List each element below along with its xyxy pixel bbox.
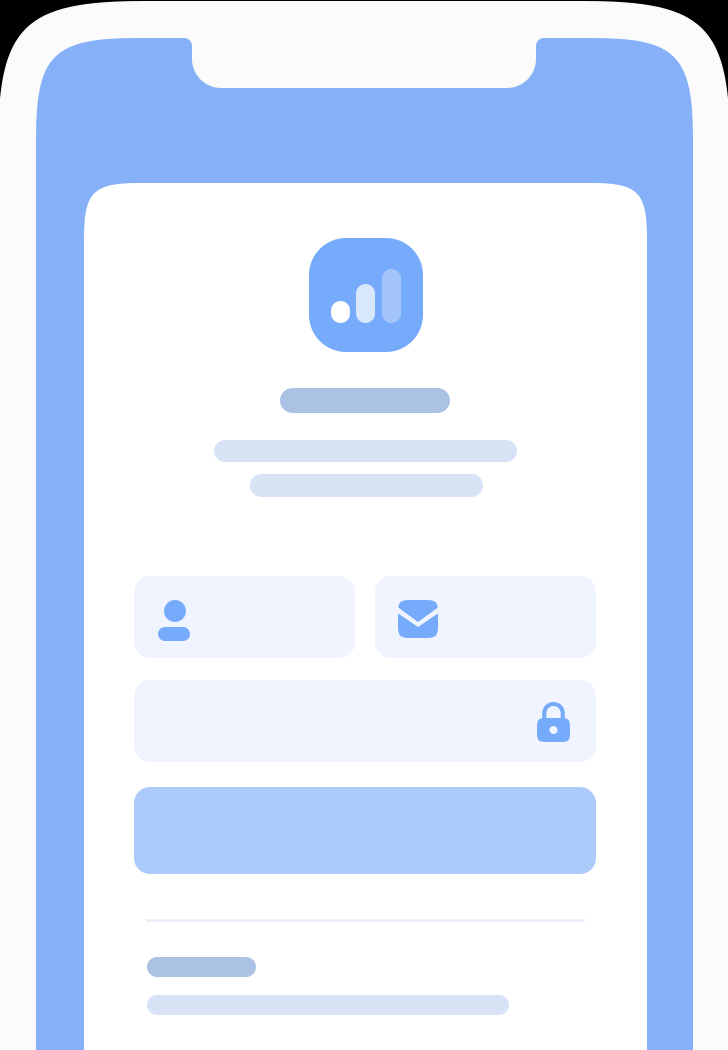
button[interactable]: Email field — [375, 576, 596, 658]
button[interactable]: Password field — [134, 680, 596, 762]
button[interactable]: Sign up — [134, 787, 596, 874]
button[interactable]: Name field — [134, 576, 355, 658]
